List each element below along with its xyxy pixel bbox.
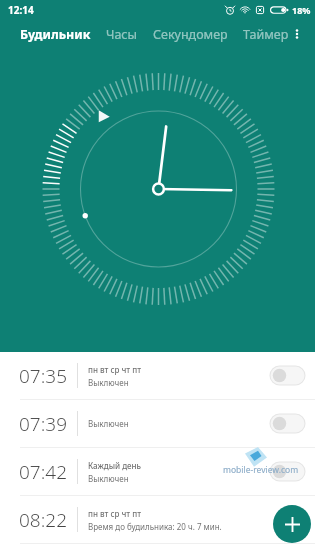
staticText: Секундомер: [153, 26, 228, 42]
staticText: Часы: [106, 26, 138, 42]
button[interactable]: Секундомер: [152, 22, 229, 46]
staticText: mobile-review.com: [223, 464, 299, 476]
staticText: 12:14: [8, 3, 34, 17]
button[interactable]: More options: [290, 27, 304, 41]
staticText: Выключен: [88, 473, 129, 484]
staticText: Каждый день: [88, 460, 142, 471]
staticText: пн вт ср чт пт: [88, 364, 141, 375]
staticText: 07:39: [19, 411, 68, 437]
button[interactable]: 07:35: [0, 352, 315, 399]
button[interactable]: 07:42: [0, 448, 315, 495]
staticText: Время до будильника: 20 ч. 7 мин.: [88, 521, 222, 532]
staticText: Будильник: [20, 26, 91, 42]
staticText: Выключен: [88, 418, 129, 429]
button[interactable]: Будильник: [19, 22, 92, 46]
button[interactable]: Часы: [105, 22, 139, 46]
button[interactable]: Add alarm: [273, 505, 311, 543]
staticText: 07:42: [19, 459, 68, 485]
button[interactable]: Toggle alarm: [270, 462, 305, 481]
staticText: 18%: [292, 4, 311, 16]
button[interactable]: 07:39: [0, 400, 315, 447]
staticText: пн вт ср чт пт: [88, 508, 141, 519]
staticText: 08:22: [19, 507, 68, 533]
button[interactable]: Toggle alarm: [270, 414, 305, 433]
button[interactable]: Таймер: [242, 22, 290, 46]
button[interactable]: Toggle alarm: [270, 366, 305, 385]
staticText: 07:35: [19, 363, 68, 389]
staticText: Таймер: [243, 26, 289, 42]
button[interactable]: 08:22: [0, 496, 315, 543]
staticText: Выключен: [88, 377, 129, 388]
